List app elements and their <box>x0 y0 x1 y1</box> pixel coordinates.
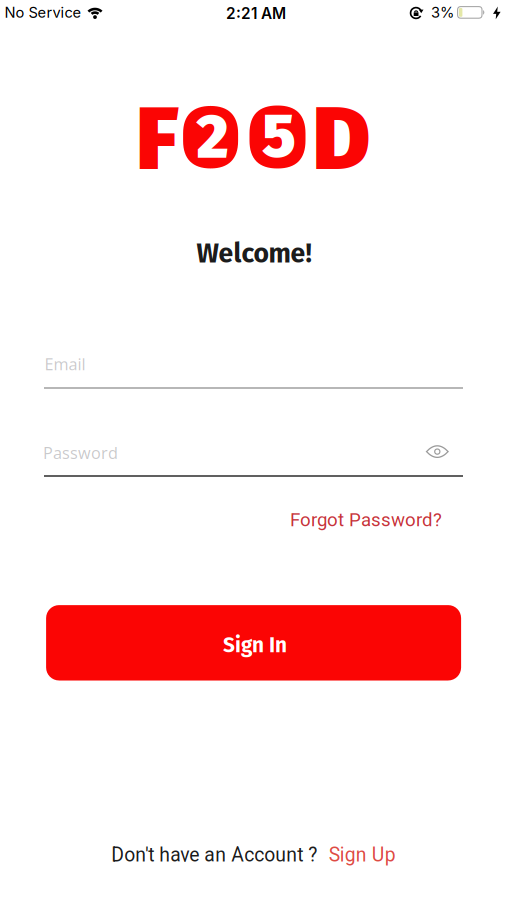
button[interactable]: Forgot Password? <box>290 509 442 531</box>
staticText: Welcome! <box>196 238 311 269</box>
staticText: Email <box>44 353 85 375</box>
staticText: D <box>312 87 370 192</box>
staticText: No Service <box>4 4 81 21</box>
staticText: F <box>136 87 179 192</box>
button[interactable]: Sign In <box>46 605 461 680</box>
button[interactable]: Show password <box>426 445 449 458</box>
staticText: Password <box>43 441 118 464</box>
staticText: 2:21 AM <box>226 4 286 23</box>
staticText: Forgot Password? <box>290 509 442 531</box>
button[interactable]: Sign Up <box>329 844 396 866</box>
staticText: 5 <box>262 100 296 173</box>
staticText: 3% <box>431 4 454 21</box>
staticText: 2 <box>197 101 229 174</box>
staticText: Sign Up <box>329 844 396 866</box>
staticText: Sign In <box>223 633 287 658</box>
staticText: Don't have an Account ? <box>111 844 317 866</box>
